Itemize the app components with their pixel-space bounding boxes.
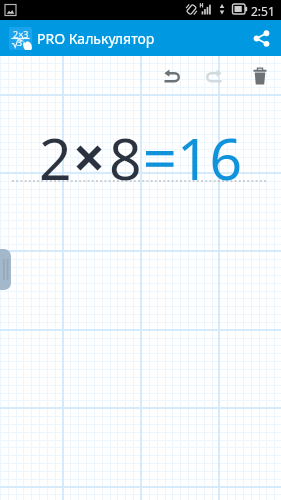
staticText: 8 (109, 119, 142, 197)
button[interactable]: Undo (154, 56, 191, 96)
staticText: 2×3 (13, 28, 29, 40)
staticText: 16 (177, 119, 243, 197)
staticText: 2 (39, 119, 72, 197)
button[interactable]: Delete (241, 56, 278, 96)
button[interactable]: Redo (195, 56, 232, 96)
button[interactable]: Open panel (0, 249, 11, 290)
button[interactable]: Share (241, 20, 281, 56)
staticText: 2:51 (251, 3, 275, 19)
staticText: 3 (17, 36, 23, 48)
staticText: PRO Калькулятор (37, 29, 155, 48)
